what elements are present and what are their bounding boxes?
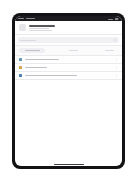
button[interactable] — [103, 49, 116, 52]
button[interactable] — [67, 49, 80, 52]
button[interactable] — [15, 64, 122, 71]
button[interactable]: App icon — [19, 24, 26, 31]
button[interactable]: Search — [18, 37, 119, 43]
button[interactable] — [15, 72, 122, 79]
button[interactable] — [19, 48, 45, 53]
button[interactable] — [15, 56, 122, 63]
